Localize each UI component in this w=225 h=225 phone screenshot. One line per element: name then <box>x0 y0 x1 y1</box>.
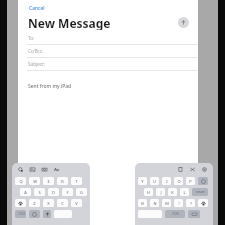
staticText: return <box>196 190 205 194</box>
button[interactable]: B <box>138 199 147 207</box>
button[interactable]: Privacy <box>17 166 24 173</box>
staticText: .?123 <box>17 212 25 216</box>
button[interactable]: .?123 <box>15 210 26 218</box>
button[interactable]: Q <box>15 177 26 185</box>
staticText: L <box>183 190 186 195</box>
button[interactable]: K <box>168 188 177 196</box>
staticText: K <box>171 190 174 195</box>
button[interactable]: A <box>20 188 31 196</box>
staticText: S <box>38 190 41 195</box>
staticText: U <box>153 179 156 184</box>
button[interactable]: V <box>71 199 82 207</box>
staticText: X <box>47 201 50 206</box>
staticText: O <box>177 179 181 184</box>
staticText: D <box>52 190 55 195</box>
button[interactable]: Shift <box>198 199 208 207</box>
staticText: B <box>141 201 144 206</box>
button[interactable]: Z <box>29 199 40 207</box>
button[interactable]: R <box>57 177 68 185</box>
button[interactable]: F <box>62 188 73 196</box>
staticText: T <box>75 179 78 184</box>
staticText: Y <box>141 179 144 184</box>
staticText: New Message <box>28 15 111 30</box>
button[interactable]: O <box>174 177 183 185</box>
button[interactable]: ? <box>186 199 195 207</box>
staticText: C <box>61 201 64 206</box>
button[interactable]: S <box>34 188 45 196</box>
button[interactable]: Documents <box>177 166 184 173</box>
staticText: H <box>147 190 150 195</box>
button[interactable]: Shift <box>15 199 26 207</box>
button[interactable]: return <box>192 188 208 196</box>
button[interactable]: X <box>43 199 54 207</box>
staticText: Q <box>19 179 23 184</box>
button[interactable]: Cc/Bcc: <box>18 45 198 57</box>
button[interactable]: .?123 <box>165 210 185 218</box>
button[interactable]: Camera <box>41 166 48 173</box>
staticText: Cc/Bcc: <box>28 48 44 54</box>
button[interactable]: Keyboard settings <box>201 166 208 173</box>
staticText: F <box>66 190 69 195</box>
staticText: R <box>61 179 64 184</box>
button[interactable]: E <box>43 177 54 185</box>
staticText: W <box>33 179 37 184</box>
staticText: E <box>47 179 50 184</box>
button[interactable] <box>54 210 72 218</box>
button[interactable]: ! <box>174 199 183 207</box>
button[interactable]: Dictation <box>43 210 51 218</box>
button[interactable]: M <box>162 199 171 207</box>
staticText: Z <box>33 201 36 206</box>
staticText: Subject: <box>28 61 45 67</box>
staticText: P <box>189 179 192 184</box>
button[interactable]: C <box>57 199 68 207</box>
button[interactable]: J <box>156 188 165 196</box>
button[interactable]: To: <box>18 32 198 44</box>
staticText: A <box>24 190 27 195</box>
staticText: V <box>75 201 78 206</box>
button[interactable]: Markup <box>189 166 196 173</box>
staticText: M <box>165 201 169 206</box>
staticText: .?123 <box>171 212 179 216</box>
button[interactable]: H <box>144 188 153 196</box>
staticText: N <box>153 201 157 206</box>
button[interactable]: Hide keyboard <box>188 210 200 218</box>
staticText: I <box>166 179 168 184</box>
button[interactable]: U <box>150 177 159 185</box>
button[interactable]: P <box>186 177 195 185</box>
button[interactable]: Format text <box>53 166 60 173</box>
button[interactable]: Backspace <box>198 177 208 185</box>
staticText: J <box>160 190 162 195</box>
button[interactable]: T <box>71 177 82 185</box>
staticText: G <box>80 190 83 195</box>
button[interactable]: L <box>180 188 189 196</box>
button[interactable]: N <box>150 199 159 207</box>
button[interactable]: G <box>76 188 87 196</box>
button[interactable]: D <box>48 188 59 196</box>
button[interactable]: Subject: <box>18 58 198 70</box>
staticText: Cancel <box>29 5 45 12</box>
button[interactable]: W <box>29 177 40 185</box>
staticText: Sent from my iPad <box>28 83 72 90</box>
staticText: ? <box>190 201 192 206</box>
button[interactable]: Cancel <box>28 4 46 13</box>
staticText: ! <box>178 201 180 206</box>
button[interactable]: Photos <box>29 166 36 173</box>
button[interactable]: Send <box>178 17 189 28</box>
button[interactable]: Emoji <box>29 210 40 218</box>
button[interactable]: I <box>162 177 171 185</box>
button[interactable]: Y <box>138 177 147 185</box>
staticText: To: <box>28 35 35 41</box>
button[interactable] <box>138 210 162 218</box>
